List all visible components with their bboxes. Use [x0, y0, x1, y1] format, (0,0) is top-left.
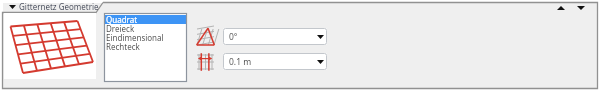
- button[interactable]: 0.1 m: [223, 53, 327, 70]
- staticText: Quadrat: [106, 14, 138, 25]
- button[interactable]: Rotation angle: [195, 27, 216, 47]
- button[interactable]: Gitternetz Geometrie: [4, 0, 99, 13]
- button[interactable]: Scroll down: [573, 1, 589, 14]
- button[interactable]: 0°: [223, 28, 327, 45]
- button[interactable]: Grid spacing: [195, 52, 216, 72]
- button[interactable]: [105, 33, 186, 42]
- staticText: Rechteck: [106, 41, 140, 52]
- button[interactable]: [105, 42, 186, 51]
- staticText: Gitternetz Geometrie: [19, 1, 99, 12]
- staticText: Dreieck: [106, 23, 135, 34]
- staticText: 0.1 m: [229, 56, 252, 68]
- button[interactable]: [105, 15, 186, 24]
- staticText: Eindimensional: [106, 32, 164, 43]
- button[interactable]: Scroll up: [553, 1, 569, 14]
- button[interactable]: Grid preview: [4, 13, 96, 79]
- staticText: 0°: [229, 31, 238, 43]
- button[interactable]: [105, 24, 186, 33]
